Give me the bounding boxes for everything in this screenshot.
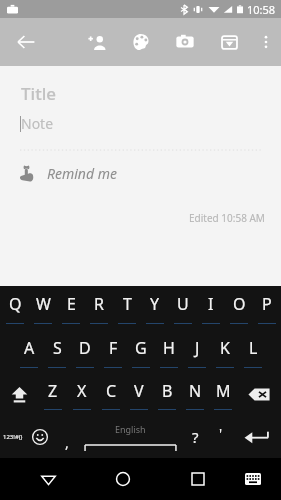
button[interactable]: U <box>169 286 197 331</box>
staticText: P <box>262 293 272 315</box>
button[interactable]: Emoji <box>26 416 54 458</box>
button[interactable]: Switch keyboard <box>235 461 271 497</box>
button[interactable]: Q <box>0 286 29 331</box>
button[interactable]: Shift <box>0 373 38 416</box>
staticText: Z <box>48 380 58 402</box>
button[interactable]: Backspace <box>237 373 281 416</box>
staticText: ' <box>219 424 223 443</box>
staticText: F <box>109 337 118 359</box>
button[interactable]: M <box>209 373 237 416</box>
staticText: D <box>79 337 91 359</box>
staticText: ? <box>192 427 199 447</box>
staticText: R <box>94 293 104 315</box>
staticText: M <box>216 380 231 402</box>
button[interactable]: ? <box>181 416 209 458</box>
staticText: O <box>233 293 246 315</box>
staticText: Y <box>150 293 160 315</box>
button[interactable]: Y <box>141 286 169 331</box>
staticText: A <box>24 337 35 359</box>
staticText: J <box>195 337 200 359</box>
button[interactable]: Home <box>103 459 143 499</box>
button[interactable]: G <box>127 331 155 373</box>
staticText: T <box>123 293 132 315</box>
button[interactable]: O <box>225 286 253 331</box>
staticText: Remind me <box>47 164 117 183</box>
button[interactable]: Space <box>80 416 181 458</box>
staticText: Title <box>21 82 57 105</box>
button[interactable]: H <box>155 331 183 373</box>
staticText: U <box>177 293 189 315</box>
staticText: B <box>162 380 173 402</box>
button[interactable]: Remind me <box>18 164 117 183</box>
button[interactable]: V <box>125 373 153 416</box>
staticText: , <box>65 433 69 452</box>
button[interactable]: K <box>211 331 239 373</box>
staticText: E <box>67 293 76 315</box>
staticText: K <box>220 337 230 359</box>
button[interactable]: More options <box>251 18 281 66</box>
staticText: I <box>208 293 214 315</box>
button[interactable]: Change color <box>119 18 163 66</box>
button[interactable]: P <box>253 286 281 331</box>
staticText: Note <box>21 114 54 133</box>
staticText: Q <box>9 293 22 315</box>
button[interactable]: Add image <box>163 18 207 66</box>
button[interactable]: S <box>43 331 71 373</box>
staticText: S <box>53 337 62 359</box>
button[interactable]: Symbols <box>0 416 26 458</box>
staticText: W <box>36 293 51 315</box>
staticText: L <box>249 337 258 359</box>
staticText: G <box>135 337 147 359</box>
staticText: H <box>163 337 175 359</box>
button[interactable]: I <box>197 286 225 331</box>
staticText: C <box>106 380 117 402</box>
button[interactable]: Back <box>6 22 46 62</box>
staticText: English <box>115 423 146 435</box>
staticText: X <box>77 380 87 402</box>
button[interactable]: J <box>183 331 211 373</box>
button[interactable]: Z <box>38 373 67 416</box>
button[interactable]: X <box>67 373 96 416</box>
button[interactable]: L <box>239 331 267 373</box>
button[interactable]: E <box>57 286 85 331</box>
button[interactable]: B <box>153 373 181 416</box>
button[interactable]: R <box>85 286 113 331</box>
button[interactable]: F <box>99 331 127 373</box>
staticText: 10:58 <box>247 2 276 17</box>
button[interactable]: Back <box>28 459 68 499</box>
button[interactable]: A <box>14 331 43 373</box>
button[interactable]: ' <box>209 416 233 458</box>
button[interactable]: Archive <box>207 18 251 66</box>
staticText: N <box>189 380 202 402</box>
button[interactable]: Recent apps <box>178 459 218 499</box>
button[interactable]: N <box>181 373 209 416</box>
staticText: Edited 10:58 AM <box>189 211 265 225</box>
button[interactable]: C <box>96 373 125 416</box>
button[interactable]: D <box>71 331 99 373</box>
button[interactable]: Enter <box>233 416 281 458</box>
staticText: 123!#() <box>3 433 23 441</box>
staticText: V <box>134 380 144 402</box>
button[interactable]: , <box>54 416 80 458</box>
button[interactable]: W <box>29 286 57 331</box>
button[interactable]: Add collaborator <box>75 18 119 66</box>
button[interactable]: T <box>113 286 141 331</box>
